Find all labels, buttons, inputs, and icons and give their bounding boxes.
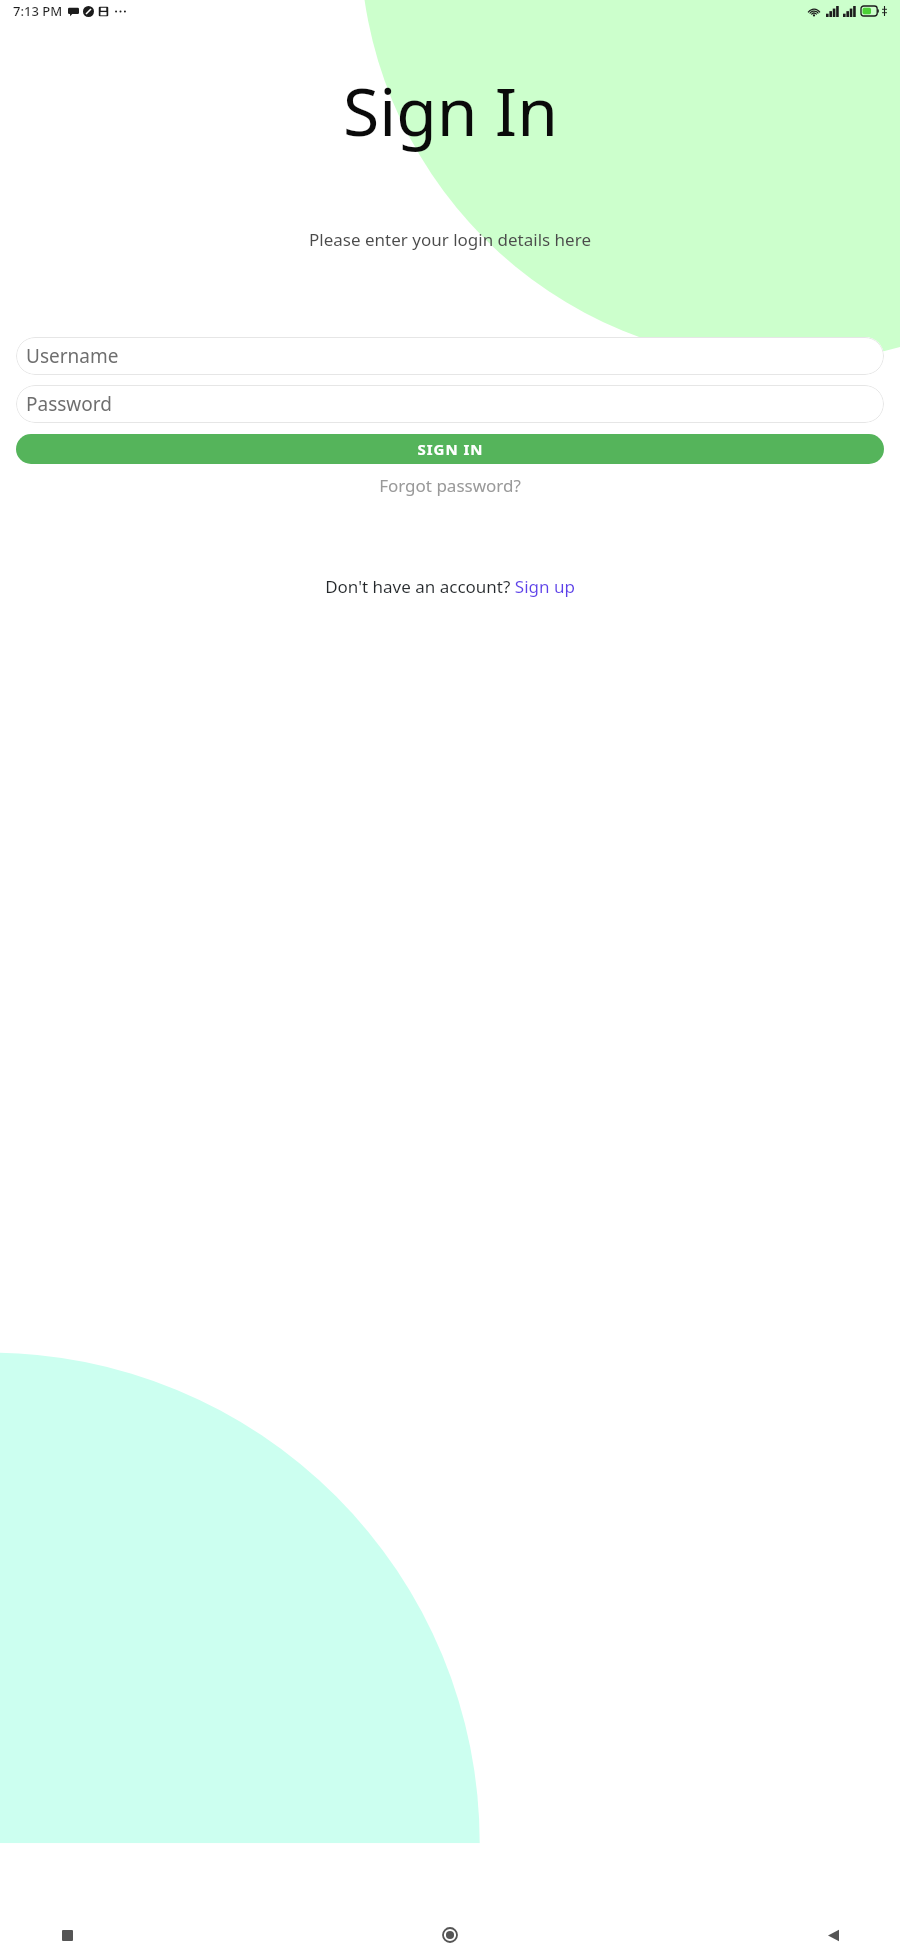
button[interactable]: Username bbox=[16, 337, 884, 375]
button[interactable]: Password bbox=[16, 385, 884, 423]
staticText: Username bbox=[26, 343, 119, 369]
button[interactable]: Back bbox=[816, 1918, 850, 1952]
button[interactable]: Don't have an account? Sign up bbox=[317, 571, 583, 602]
button[interactable]: Home bbox=[433, 1918, 467, 1952]
staticText: Please enter your login details here bbox=[309, 228, 591, 251]
button[interactable]: Recent apps bbox=[50, 1918, 84, 1952]
staticText: Don't have an account? Sign up bbox=[325, 575, 575, 598]
staticText: Sign In bbox=[343, 65, 558, 155]
button[interactable]: SIGN IN bbox=[16, 434, 884, 464]
staticText: Forgot password? bbox=[379, 474, 521, 497]
button[interactable]: Forgot password? bbox=[369, 471, 531, 500]
staticText: SIGN IN bbox=[417, 439, 484, 459]
staticText: 7:13 PM bbox=[13, 2, 63, 20]
staticText: Password bbox=[26, 391, 112, 417]
